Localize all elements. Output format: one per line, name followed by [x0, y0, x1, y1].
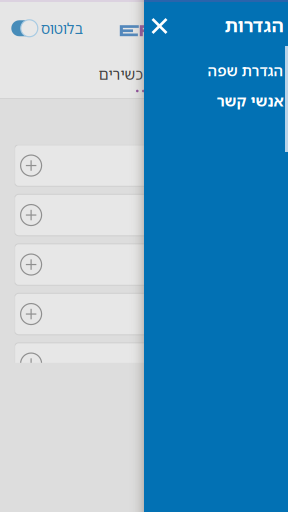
button[interactable]: Add device [15, 145, 277, 186]
staticText: בלוטוס [40, 18, 82, 38]
staticText: מכשירים [98, 64, 152, 84]
button[interactable]: Add device [15, 293, 277, 335]
staticText: אנשי קשר [216, 90, 283, 111]
button[interactable]: הגדרת שפה [144, 59, 283, 82]
button[interactable]: בלוטוס [11, 18, 82, 38]
button[interactable]: Add device [15, 244, 277, 285]
button[interactable]: מכשירים [98, 64, 152, 84]
button[interactable]: Add device [15, 343, 277, 384]
staticText: הגדרת שפה [207, 60, 283, 80]
staticText: הגדרות [224, 12, 283, 38]
button[interactable]: אנשי קשר [144, 89, 283, 112]
button[interactable]: Close settings [144, 11, 174, 41]
button[interactable]: Add device [15, 194, 277, 236]
